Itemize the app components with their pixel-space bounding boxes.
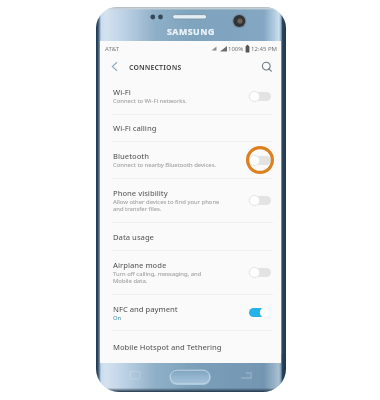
button[interactable]: Wi-Fi calling xyxy=(100,115,281,141)
staticText: Connect to nearby Bluetooth devices. xyxy=(113,161,238,169)
button[interactable]: Wi-Fi xyxy=(100,78,281,114)
staticText: On xyxy=(113,314,223,322)
button[interactable]: Search xyxy=(260,60,274,74)
button[interactable]: Home xyxy=(169,369,211,385)
staticText: Airplane mode xyxy=(113,260,167,270)
staticText: Mobile Hotspot and Tethering xyxy=(113,342,222,352)
button[interactable]: NFC and payment switch xyxy=(249,307,271,318)
staticText: AT&T xyxy=(105,45,119,53)
staticText: Wi-Fi calling xyxy=(113,123,157,133)
button[interactable]: Bluetooth xyxy=(100,142,281,178)
staticText: Bluetooth xyxy=(113,151,149,161)
button[interactable]: Wi-Fi switch xyxy=(249,91,271,102)
button[interactable]: Back xyxy=(100,56,122,78)
button[interactable]: Data usage xyxy=(100,223,281,250)
button[interactable]: Phone visibility xyxy=(100,179,281,222)
staticText: Connect to Wi-Fi networks. xyxy=(113,97,223,105)
button[interactable]: Airplane mode switch xyxy=(249,267,271,278)
staticText: Wi-Fi xyxy=(113,87,131,97)
staticText: NFC and payment xyxy=(113,304,178,314)
button[interactable]: Back xyxy=(240,368,254,382)
staticText: SAMSUNG xyxy=(167,26,215,38)
staticText: CONNECTIONS xyxy=(129,63,182,72)
staticText: 12:45 PM xyxy=(251,45,277,53)
staticText: Phone visibility xyxy=(113,188,168,198)
button[interactable]: Phone visibility switch xyxy=(249,195,271,206)
button[interactable]: NFC and payment xyxy=(100,295,281,330)
staticText: Data usage xyxy=(113,232,154,242)
button[interactable]: Airplane mode xyxy=(100,251,281,294)
staticText: 100% xyxy=(228,45,244,53)
button[interactable]: Bluetooth switch xyxy=(249,155,271,166)
staticText: Turn off calling, messaging, and Mobile … xyxy=(113,270,213,285)
button[interactable]: Recents xyxy=(128,368,142,382)
staticText: Allow other devices to find your phone a… xyxy=(113,198,228,213)
button[interactable]: Mobile Hotspot and Tethering xyxy=(100,331,281,362)
